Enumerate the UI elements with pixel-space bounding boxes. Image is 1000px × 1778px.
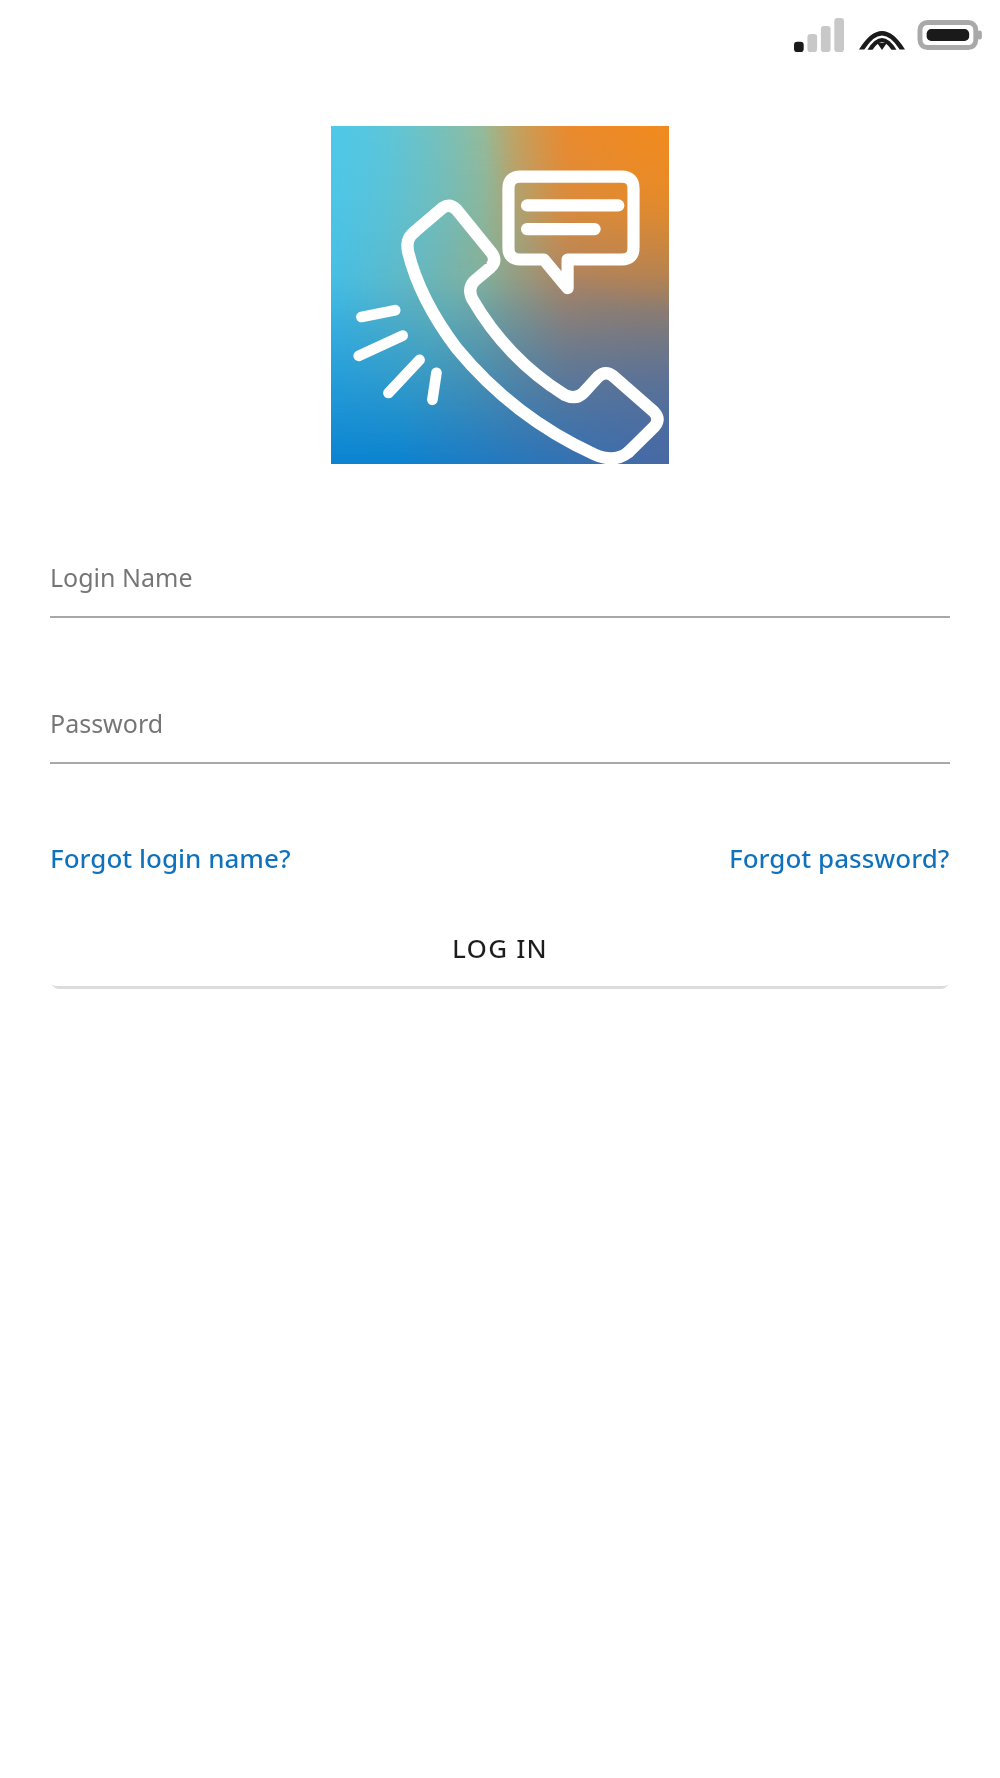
staticText: Forgot password? [729,840,950,875]
other: App logo [331,126,669,464]
button[interactable]: LOG IN [50,909,950,986]
staticText: Forgot login name? [50,840,291,875]
button[interactable]: Forgot password? [729,840,950,875]
button[interactable]: Forgot login name? [50,840,291,875]
staticText: LOG IN [452,930,548,965]
staticText: Password [50,706,164,740]
staticText: Login Name [50,560,193,594]
button[interactable]: Login Name [50,560,950,618]
button[interactable]: Password [50,706,950,764]
other: Cellular signal [794,18,844,52]
other: Wi-Fi [859,18,905,52]
other: Battery full [920,18,982,52]
